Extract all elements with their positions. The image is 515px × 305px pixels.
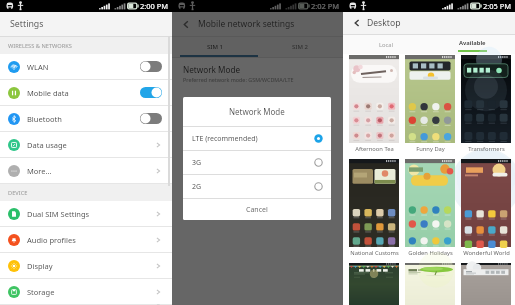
button[interactable]: Cancel — [183, 199, 331, 220]
staticText: SIM 1 — [207, 43, 223, 51]
other: Back — [181, 19, 192, 30]
staticText: Desktop — [367, 17, 401, 29]
button[interactable]: Display — [0, 253, 172, 279]
staticText: 2:02 PM — [311, 1, 340, 11]
button[interactable]: LTE (recommended) — [183, 127, 331, 150]
staticText: Cancel — [246, 205, 268, 215]
staticText: Storage — [27, 287, 154, 297]
staticText: Bluetooth — [27, 114, 140, 124]
button[interactable]: Audio profiles — [0, 227, 172, 253]
button[interactable]: Bluetooth — [0, 106, 172, 132]
button[interactable] — [405, 263, 455, 305]
button[interactable]: Afternoon Tea — [349, 55, 399, 159]
button[interactable] — [461, 263, 511, 305]
staticText: Local — [379, 41, 394, 49]
staticText: LTE (recommended) — [192, 134, 314, 144]
staticText: Afternoon Tea — [355, 145, 394, 153]
staticText: DEVICE — [8, 189, 28, 197]
staticText: National Customs — [350, 249, 399, 257]
staticText: Wonderful World — [463, 249, 510, 257]
staticText: Network Mode — [183, 64, 241, 75]
staticText: Data usage — [27, 140, 154, 150]
button[interactable]: 3G — [183, 151, 331, 174]
button[interactable]: Transformers — [461, 55, 511, 159]
staticText: SIM 2 — [292, 43, 308, 51]
staticText: 2G — [192, 182, 314, 192]
button[interactable]: SIM 2 — [257, 37, 343, 57]
staticText: Network Mode — [229, 106, 285, 117]
staticText: 3G — [192, 158, 314, 168]
button[interactable]: More... — [0, 158, 172, 184]
button[interactable]: SIM 1 — [172, 37, 257, 57]
button[interactable]: Funny Day — [405, 55, 455, 159]
staticText: 2:05 PM — [483, 1, 512, 11]
staticText: Settings — [10, 18, 44, 30]
button[interactable]: National Customs — [349, 159, 399, 263]
button[interactable]: Dual SIM Settings — [0, 201, 172, 227]
button[interactable]: Available — [429, 35, 515, 54]
button[interactable] — [349, 263, 399, 305]
staticText: 2:00 PM — [140, 1, 169, 11]
button[interactable]: WLAN — [0, 54, 172, 80]
button[interactable]: 2G — [183, 175, 331, 198]
staticText: Golden Holidays — [408, 249, 453, 257]
staticText: WLAN — [27, 62, 140, 72]
button[interactable]: Data usage — [0, 132, 172, 158]
staticText: Available — [459, 39, 486, 47]
button[interactable]: Local — [343, 35, 429, 54]
staticText: Mobile data — [27, 88, 140, 98]
staticText: Funny Day — [416, 145, 445, 153]
button[interactable]: Wonderful World — [461, 159, 511, 263]
staticText: Dual SIM Settings — [27, 209, 154, 219]
staticText: Display — [27, 261, 154, 271]
staticText: More... — [27, 166, 154, 176]
button[interactable]: Golden Holidays — [405, 159, 455, 263]
button[interactable]: Mobile data — [0, 80, 172, 106]
staticText: Mobile network settings — [198, 18, 295, 30]
staticText: Audio profiles — [27, 235, 154, 245]
other: Back — [352, 18, 362, 28]
staticText: Transformers — [468, 145, 505, 153]
staticText: Preferred network mode: GSM/WCDMA/LTE — [183, 76, 294, 83]
button[interactable]: Storage — [0, 279, 172, 305]
staticText: WIRELESS & NETWORKS — [8, 42, 72, 50]
